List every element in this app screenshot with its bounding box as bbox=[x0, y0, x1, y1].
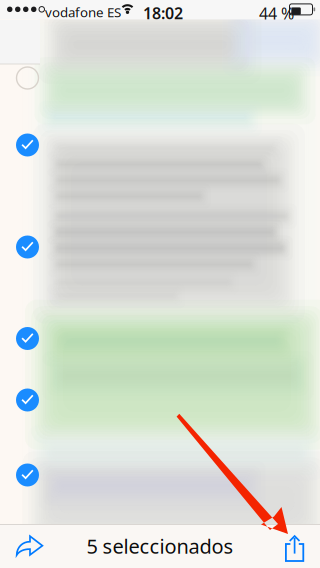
button[interactable]: Compartir bbox=[264, 524, 320, 568]
staticText: 18:02 bbox=[143, 2, 183, 24]
staticText: vodafone ES bbox=[45, 3, 121, 21]
staticText: 5 seleccionados bbox=[86, 533, 233, 559]
button[interactable]: Mensaje seleccionado bbox=[7, 227, 47, 267]
button[interactable]: Seleccionar mensaje bbox=[7, 58, 47, 98]
button[interactable]: Mensaje seleccionado bbox=[7, 125, 47, 165]
staticText: 44 % bbox=[259, 3, 294, 24]
button[interactable]: Reenviar bbox=[0, 524, 56, 568]
button[interactable]: Mensaje seleccionado bbox=[7, 455, 47, 495]
button[interactable]: Mensaje seleccionado bbox=[7, 380, 47, 420]
button[interactable]: Mensaje seleccionado bbox=[7, 318, 47, 358]
